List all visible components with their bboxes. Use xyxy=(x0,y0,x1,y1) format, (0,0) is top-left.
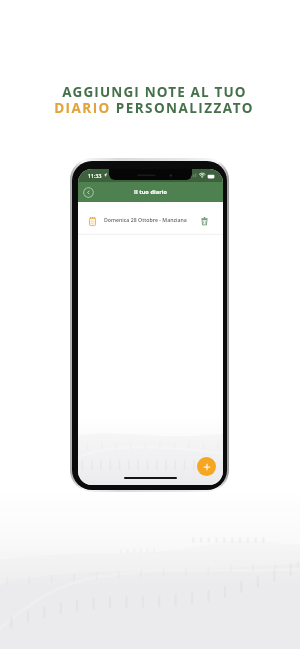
staticText: 11:33 xyxy=(88,172,102,179)
staticText: AGGIUNGI NOTE AL TUO xyxy=(62,83,247,101)
button[interactable]: Domenica 28 Ottobre - Manziana xyxy=(78,202,223,235)
staticText: Il tuo diario xyxy=(134,188,168,196)
staticText: Domenica 28 Ottobre - Manziana xyxy=(104,216,187,223)
staticText: DIARIO PERSONALIZZATO xyxy=(54,99,254,117)
button[interactable]: Aggiungi nota xyxy=(197,457,216,476)
button[interactable]: Elimina nota xyxy=(199,215,210,226)
button[interactable]: Indietro xyxy=(83,187,94,198)
